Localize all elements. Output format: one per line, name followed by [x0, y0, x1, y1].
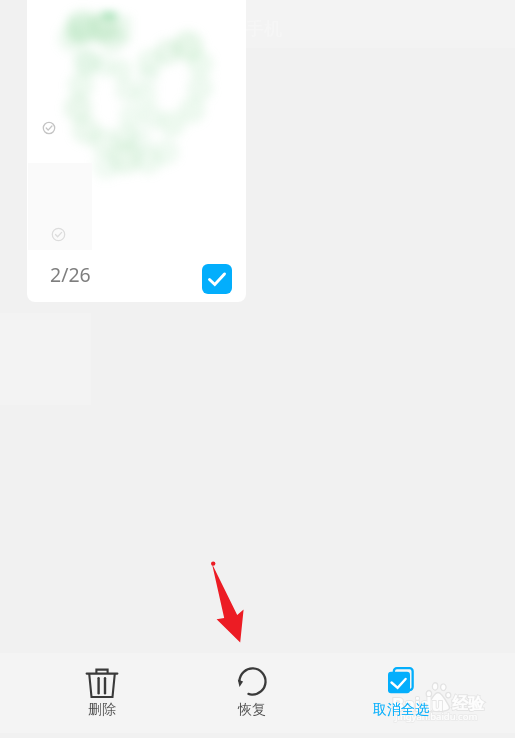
button[interactable]: 取消全选 — [345, 653, 457, 733]
button[interactable]: 恢复 — [196, 653, 308, 733]
staticText: 经验 — [452, 694, 484, 714]
staticText: 取消全选 — [373, 701, 429, 719]
staticText: 2/26 — [50, 261, 91, 288]
staticText: 恢复 — [238, 701, 266, 719]
staticText: Baidu — [392, 692, 444, 717]
staticText: jingyan.baidu.com — [395, 710, 478, 723]
button[interactable]: 2/26 — [27, 0, 246, 302]
staticText: 删除 — [88, 701, 116, 719]
staticText: jingyan.baidu.com — [395, 710, 478, 723]
staticText: 经验 — [452, 694, 484, 714]
button[interactable]: 删除 — [46, 653, 158, 733]
button[interactable]: Selected — [202, 264, 232, 294]
staticText: Baidu — [392, 692, 444, 717]
